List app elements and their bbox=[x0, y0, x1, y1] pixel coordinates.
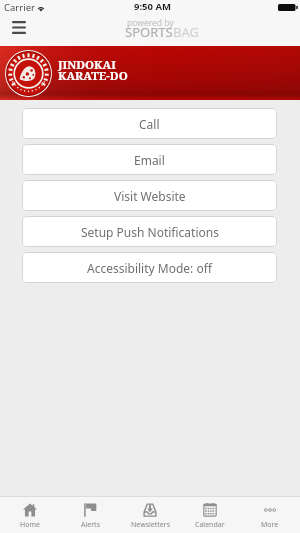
staticText: Call bbox=[139, 116, 160, 132]
staticText: Calendar bbox=[195, 520, 225, 530]
staticText: Home bbox=[20, 520, 40, 530]
staticText: KARATE-DO bbox=[58, 68, 128, 84]
button[interactable]: More bbox=[240, 497, 300, 533]
staticText: 9:50 AM bbox=[134, 0, 171, 13]
staticText: Carrier bbox=[4, 1, 35, 14]
button[interactable]: Home bbox=[0, 497, 60, 533]
staticText: Accessibility Mode: off bbox=[87, 260, 212, 276]
button[interactable]: Email bbox=[22, 144, 277, 175]
staticText: Email bbox=[134, 152, 165, 168]
button[interactable]: Open navigation menu bbox=[7, 16, 30, 38]
button[interactable]: Setup Push Notifications bbox=[22, 216, 277, 247]
button[interactable]: Calendar bbox=[180, 497, 240, 533]
staticText: Setup Push Notifications bbox=[81, 224, 219, 240]
button[interactable]: Call bbox=[22, 108, 277, 139]
staticText: powered by bbox=[127, 17, 174, 29]
staticText: Newsletters bbox=[131, 520, 170, 530]
button[interactable]: Visit Website bbox=[22, 180, 277, 211]
staticText: More bbox=[261, 520, 279, 530]
button[interactable]: Alerts bbox=[60, 497, 120, 533]
button[interactable]: Newsletters bbox=[120, 497, 180, 533]
staticText: SPORTS bbox=[125, 23, 173, 41]
staticText: Alerts bbox=[81, 520, 100, 530]
staticText: BAG bbox=[173, 23, 199, 41]
button[interactable]: Accessibility Mode: off bbox=[22, 252, 277, 283]
staticText: Visit Website bbox=[114, 188, 186, 204]
staticText: JINDOKAI bbox=[58, 57, 116, 73]
